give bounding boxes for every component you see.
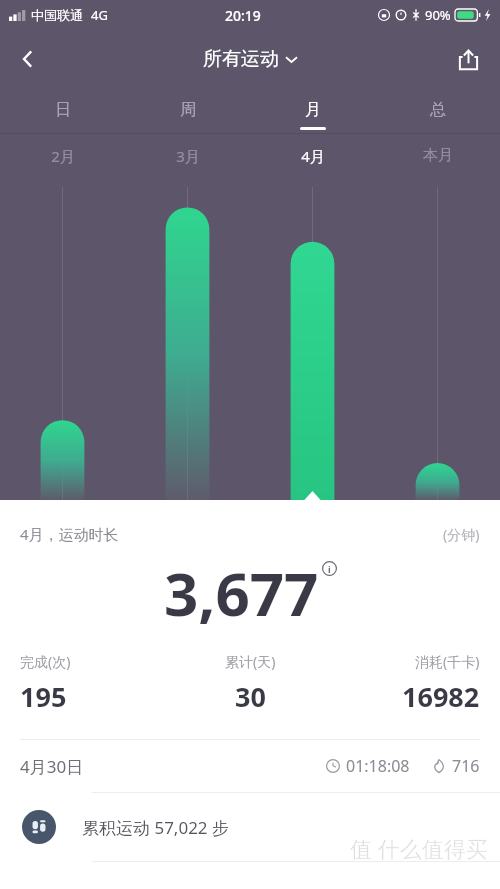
button[interactable]: 累积运动 57,022 步 <box>0 793 500 861</box>
button[interactable]: 周 <box>125 87 250 133</box>
staticText: 消耗(千卡) <box>415 652 480 671</box>
staticText: 16982 <box>402 678 480 715</box>
staticText: 值 什么值得买 <box>350 833 488 863</box>
button[interactable]: 总 <box>375 87 500 133</box>
button[interactable]: Back <box>4 35 52 83</box>
staticText: 本月 <box>423 146 453 165</box>
staticText: 所有运动 <box>203 47 279 71</box>
staticText: 累计(天) <box>225 652 276 671</box>
staticText: 中国联通 <box>31 7 83 23</box>
staticText: 日 <box>55 100 71 120</box>
staticText: 累积运动 57,022 步 <box>82 816 230 839</box>
staticText: 3,677 <box>164 552 319 634</box>
staticText: 4月30日 <box>20 755 84 778</box>
staticText: 2月 <box>51 146 75 166</box>
button[interactable]: 月 <box>250 87 375 133</box>
staticText: i <box>328 563 331 575</box>
staticText: 4月 <box>301 146 325 166</box>
button[interactable]: 日 <box>0 87 125 133</box>
staticText: 完成(次) <box>20 652 71 671</box>
staticText: 716 <box>452 755 480 777</box>
staticText: 月 <box>305 100 321 120</box>
button[interactable]: Info <box>322 561 337 576</box>
staticText: 20:19 <box>225 6 261 25</box>
staticText: 3月 <box>176 146 200 166</box>
staticText: (分钟) <box>443 525 480 544</box>
staticText: 30 <box>235 678 266 715</box>
staticText: 总 <box>430 100 446 120</box>
staticText: 4月，运动时长 <box>20 524 119 544</box>
staticText: 周 <box>180 100 196 120</box>
staticText: 195 <box>20 678 67 715</box>
button[interactable]: 所有运动 <box>197 41 303 77</box>
staticText: 90% <box>425 6 451 24</box>
button[interactable]: Share <box>444 35 492 83</box>
staticText: 01:18:08 <box>346 755 410 777</box>
staticText: 4G <box>91 6 108 24</box>
button[interactable]: 4月30日 <box>0 740 500 792</box>
